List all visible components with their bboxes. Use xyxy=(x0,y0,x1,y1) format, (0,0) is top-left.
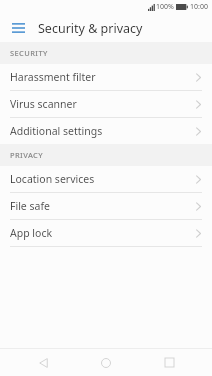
staticText: App lock xyxy=(10,226,196,240)
staticText: PRIVACY xyxy=(10,150,43,160)
staticText: Additional settings xyxy=(10,124,196,138)
staticText: Virus scanner xyxy=(10,97,196,111)
button[interactable]: Home xyxy=(86,349,126,376)
button[interactable]: App lock xyxy=(0,220,212,246)
staticText: Security & privacy xyxy=(38,20,143,37)
button[interactable]: Recent apps xyxy=(149,349,189,376)
button[interactable]: File safe xyxy=(0,193,212,219)
staticText: File safe xyxy=(10,199,196,213)
button[interactable]: Location services xyxy=(0,166,212,192)
button[interactable]: Back xyxy=(23,349,63,376)
button[interactable]: Open navigation menu xyxy=(8,18,28,38)
staticText: 100% xyxy=(156,2,174,12)
button[interactable]: Virus scanner xyxy=(0,91,212,117)
staticText: SECURITY xyxy=(10,48,48,58)
staticText: 10:00 xyxy=(190,2,208,12)
button[interactable]: Harassment filter xyxy=(0,64,212,90)
button[interactable]: Additional settings xyxy=(0,118,212,144)
staticText: Location services xyxy=(10,172,196,186)
staticText: Harassment filter xyxy=(10,70,196,84)
